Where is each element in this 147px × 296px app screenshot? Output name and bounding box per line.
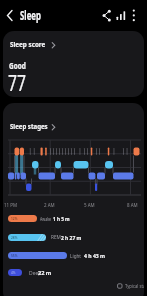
staticText: 28% (11, 235, 17, 240)
button[interactable] (114, 8, 128, 22)
staticText: Awake (40, 216, 51, 223)
staticText: 8 AM (127, 202, 138, 209)
staticText: 11 PM (4, 202, 17, 209)
staticText: 55% (11, 253, 17, 258)
staticText: 1 h 5 m (53, 215, 70, 223)
staticText: Sleep stages (10, 121, 48, 131)
staticText: Typical stage (125, 283, 144, 290)
button[interactable]: Sleep score (3, 31, 144, 97)
staticText: Sleep score (10, 39, 46, 49)
staticText: Sleep (20, 8, 41, 24)
staticText: 12% (11, 216, 17, 221)
button[interactable]: Sleep stages (3, 103, 144, 296)
staticText: 5 AM (84, 202, 95, 209)
staticText: 2 AM (44, 202, 55, 209)
staticText: Light (70, 253, 81, 260)
button[interactable] (117, 283, 123, 289)
staticText: 4 h 43 m (84, 252, 105, 260)
button[interactable] (2, 7, 19, 24)
staticText: 2 h 27 m (61, 234, 81, 242)
button[interactable] (100, 8, 114, 22)
staticText: 22 m (38, 269, 52, 277)
staticText: 77 (8, 69, 27, 97)
staticText: REM (51, 234, 61, 241)
button[interactable] (128, 8, 140, 20)
staticText: 4% (11, 270, 16, 275)
staticText: Deep (29, 270, 42, 277)
button[interactable]: Sleep (20, 8, 51, 24)
staticText: Good (9, 59, 26, 72)
